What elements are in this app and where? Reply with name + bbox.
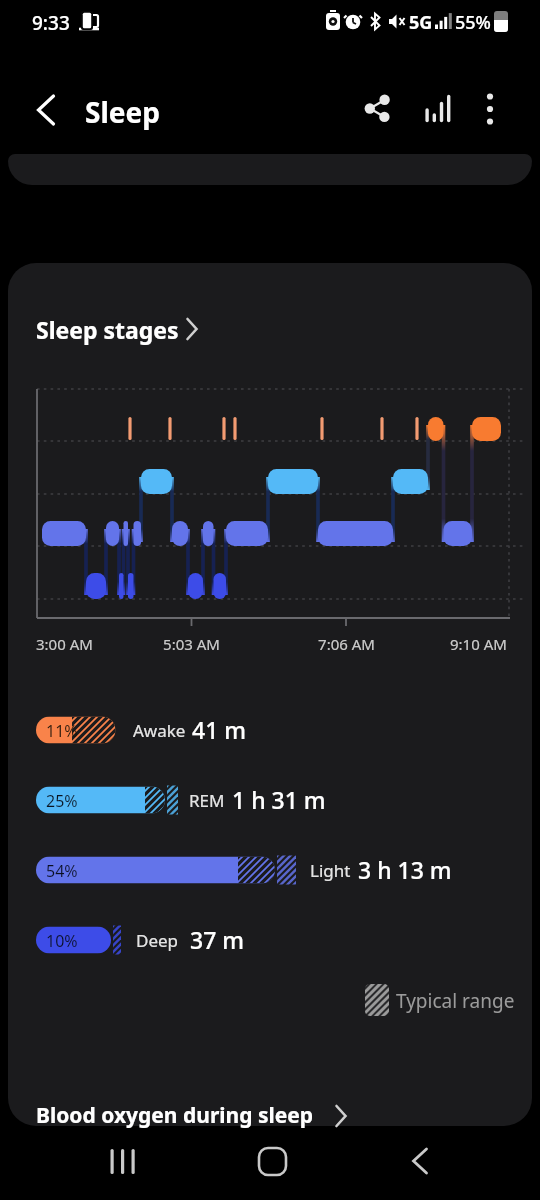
button[interactable] [8,1090,532,1126]
staticText: 5:03 AM [163,634,220,654]
staticText: 25% [46,790,78,812]
staticText: 54% [46,860,78,882]
staticText: 5G [409,10,433,35]
button[interactable] [392,1135,450,1187]
staticText: Awake [133,719,186,742]
button[interactable] [24,88,68,132]
staticText: Blood oxygen during sleep [36,1101,314,1130]
staticText: Sleep [85,93,160,131]
button[interactable] [88,1135,146,1187]
button[interactable] [243,1135,301,1187]
button[interactable] [28,305,208,353]
staticText: Light [310,859,351,882]
staticText: 41 m [192,714,247,745]
staticText: 1 h 31 m [232,784,326,815]
staticText: 55% [455,10,491,35]
staticText: Sleep stages [36,314,179,345]
staticText: 3 h 13 m [358,854,452,885]
staticText: 7:06 AM [318,634,375,654]
staticText: 3:00 AM [36,634,93,654]
staticText: Deep [136,929,179,952]
button[interactable] [355,86,399,130]
button[interactable] [468,86,512,130]
button[interactable] [415,86,459,130]
staticText: 10% [46,930,78,952]
staticText: 11% [46,720,78,742]
staticText: 9:10 AM [450,634,507,654]
staticText: 9:33 [32,10,70,36]
staticText: Typical range [396,988,515,1014]
staticText: 37 m [190,924,245,955]
staticText: REM [189,789,225,812]
